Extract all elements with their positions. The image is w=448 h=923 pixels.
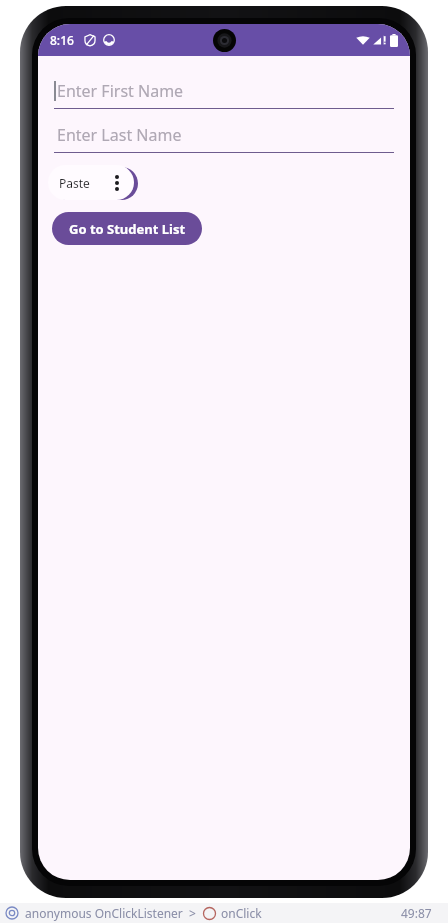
- button[interactable]: Submit: [52, 167, 138, 200]
- staticText: Submit: [72, 175, 119, 193]
- button[interactable]: More options: [100, 165, 134, 200]
- staticText: 49:87: [401, 905, 432, 921]
- staticText: Enter Last Name: [57, 124, 182, 146]
- staticText: anonymous OnClickListener: [25, 905, 183, 921]
- button[interactable]: Paste: [48, 165, 100, 200]
- staticText: Go to Student List: [69, 220, 186, 238]
- staticText: Enter First Name: [57, 80, 184, 102]
- staticText: >: [189, 905, 196, 921]
- button[interactable]: Go to Student List: [52, 212, 202, 245]
- staticText: 8:16: [50, 32, 74, 48]
- staticText: onClick: [221, 905, 262, 921]
- staticText: Paste: [59, 175, 90, 191]
